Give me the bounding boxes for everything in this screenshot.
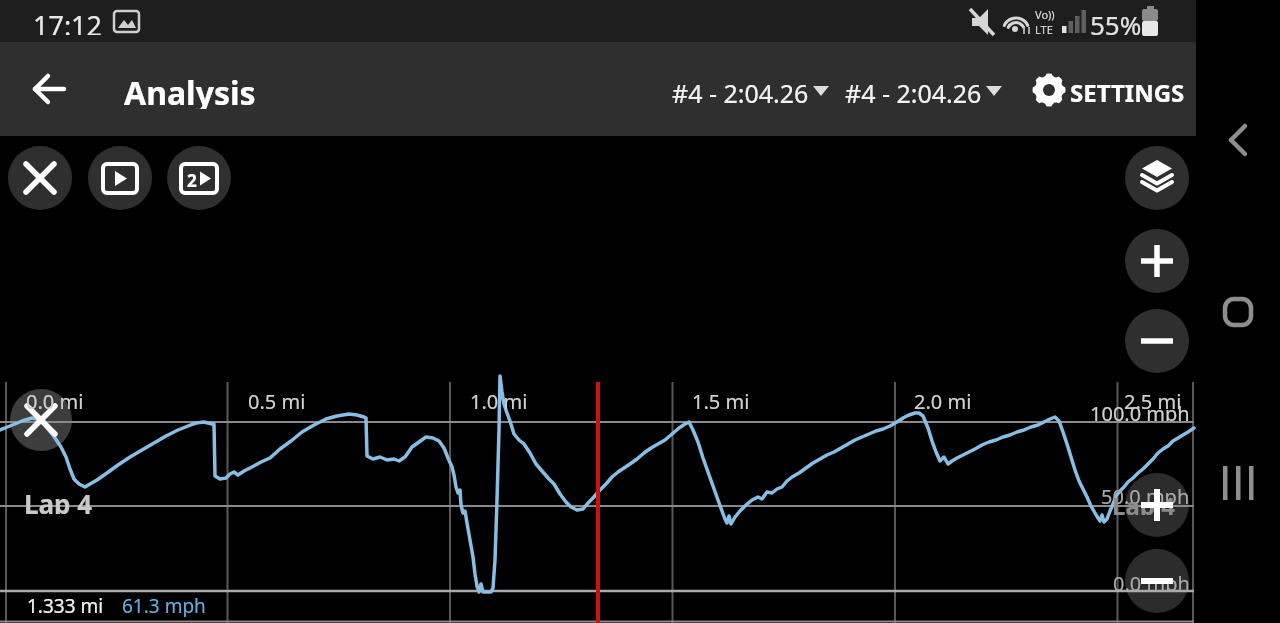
staticText: 100.0 mph	[1090, 400, 1190, 421]
staticText: 61.3 mph	[122, 593, 206, 617]
button[interactable]	[1208, 453, 1268, 513]
button[interactable]	[838, 60, 1016, 118]
button[interactable]	[1125, 309, 1189, 373]
staticText: 1.333 mi	[27, 593, 104, 617]
button[interactable]	[88, 146, 152, 210]
staticText: 1.5 mi	[692, 388, 750, 409]
button[interactable]	[1125, 473, 1189, 537]
staticText: 0.0 mi	[26, 388, 84, 409]
staticText: Lap 4	[1112, 489, 1175, 515]
staticText: 0.0 mph	[1113, 570, 1190, 591]
staticText: Analysis	[124, 71, 256, 109]
staticText: 2.5 mi	[1124, 388, 1182, 409]
button[interactable]	[8, 146, 72, 210]
button[interactable]	[1208, 110, 1268, 170]
staticText: 2.0 mi	[914, 388, 972, 409]
staticText: 50.0 mph	[1101, 483, 1190, 504]
button[interactable]	[660, 60, 838, 118]
staticText: SETTINGS	[1070, 76, 1185, 106]
button[interactable]	[1022, 60, 1192, 118]
button[interactable]: 2	[167, 146, 231, 210]
button[interactable]	[1125, 549, 1189, 613]
staticText: #4 - 2:04.26	[672, 76, 809, 106]
staticText: #4 - 2:04.26	[845, 76, 982, 106]
staticText: Lap 4	[24, 486, 93, 514]
staticText: LTE	[1035, 22, 1053, 37]
staticText: Vo))	[1035, 7, 1055, 22]
staticText: 0.5 mi	[248, 388, 306, 409]
staticText: 2	[187, 169, 197, 188]
button[interactable]	[1125, 146, 1189, 210]
button[interactable]	[1125, 229, 1189, 293]
button[interactable]	[10, 389, 72, 451]
staticText: 55%	[1090, 7, 1142, 35]
staticText: 1.0 mi	[470, 388, 528, 409]
staticText: 17:12	[33, 7, 103, 35]
button[interactable]	[1208, 282, 1268, 342]
button[interactable]	[18, 58, 80, 120]
